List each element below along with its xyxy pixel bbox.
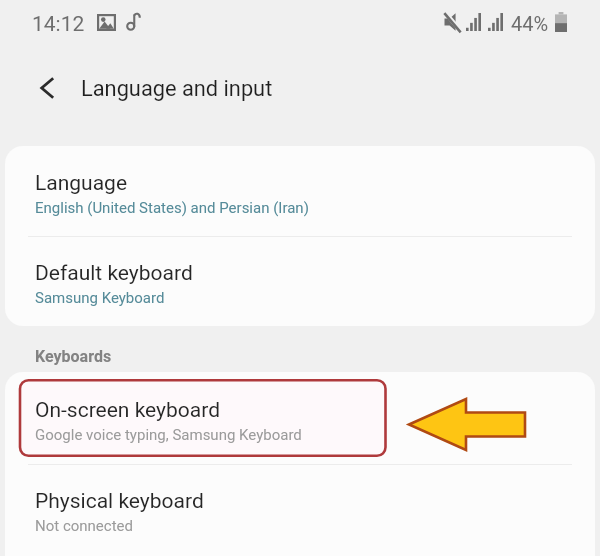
button[interactable]: On-screen keyboard	[5, 372, 595, 464]
button[interactable]: Physical keyboard	[5, 465, 595, 556]
staticText: Language and input	[81, 76, 273, 102]
button[interactable]: Language	[5, 146, 595, 236]
staticText: 14:12	[32, 12, 85, 37]
staticText: Physical keyboard	[35, 489, 204, 514]
staticText: 44%	[511, 12, 549, 35]
staticText: Keyboards	[35, 347, 112, 366]
staticText: On-screen keyboard	[35, 398, 221, 423]
staticText: English (United States) and Persian (Ira…	[35, 199, 309, 217]
staticText: Language	[35, 171, 128, 196]
staticText: Samsung Keyboard	[35, 289, 165, 307]
button[interactable]: Default keyboard	[5, 237, 595, 326]
staticText: Not connected	[35, 517, 133, 535]
staticText: Default keyboard	[35, 261, 193, 286]
button[interactable]: Back	[27, 67, 69, 109]
staticText: Google voice typing, Samsung Keyboard	[35, 426, 302, 444]
